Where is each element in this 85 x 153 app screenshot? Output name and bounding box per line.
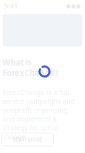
staticText: ●●● [66, 3, 81, 9]
staticText: 9:41 [4, 2, 18, 10]
staticText: What is ForexChange? [2, 57, 58, 78]
button[interactable]: READ MORE [1, 133, 53, 146]
staticText: ForexChange is a full-service campaigns … [2, 88, 74, 141]
staticText: READ MORE [12, 136, 42, 143]
